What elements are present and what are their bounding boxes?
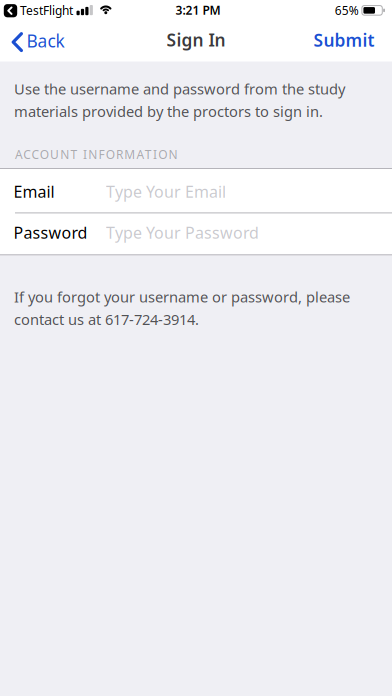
button[interactable]: Password [0, 212, 392, 253]
staticText: Submit [313, 29, 374, 52]
staticText: Email [13, 181, 54, 202]
staticText: Back [26, 29, 64, 52]
staticText: Use the username and password from the s… [14, 79, 345, 98]
staticText: If you forgot your username or password,… [14, 287, 350, 306]
staticText: ACCOUNT INFORMATION [15, 146, 177, 162]
staticText: TestFlight [20, 2, 73, 18]
staticText: contact us at 617-724-3914. [14, 309, 199, 329]
staticText: materials provided by the proctors to si… [14, 101, 323, 121]
staticText: 3:21 PM [175, 2, 220, 18]
button[interactable]: Back [8, 28, 80, 58]
staticText: Sign In [166, 28, 225, 51]
staticText: Type Your Email [106, 181, 226, 202]
staticText: Password [13, 222, 87, 243]
button[interactable]: Email [0, 169, 392, 213]
button[interactable]: Back to TestFlight [4, 2, 76, 21]
staticText: Type Your Password [106, 222, 259, 243]
button[interactable]: Submit [313, 28, 374, 51]
staticText: 65% [335, 2, 359, 18]
